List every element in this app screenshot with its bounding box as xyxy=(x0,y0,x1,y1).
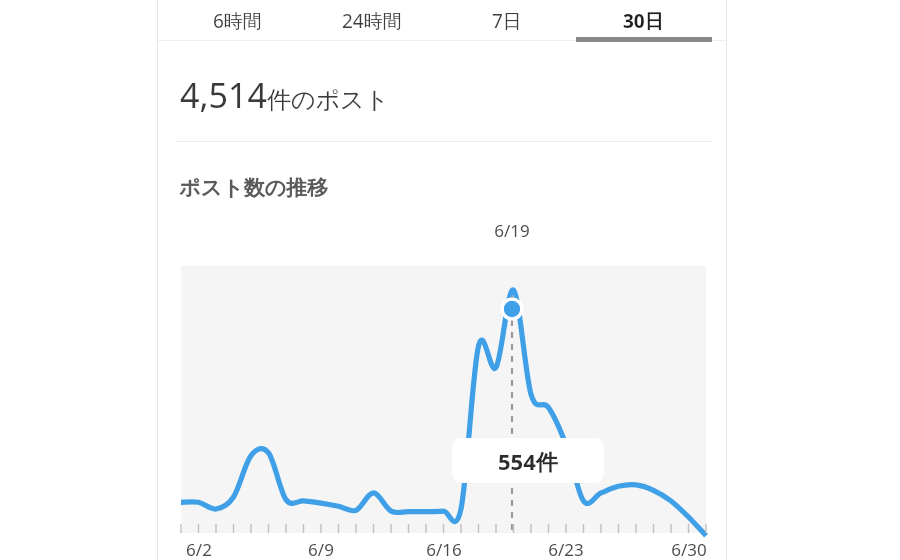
staticText: 7日 xyxy=(492,8,522,34)
staticText: 6/19 xyxy=(472,219,552,242)
staticText: 6/30 xyxy=(649,538,729,560)
staticText: 554件 xyxy=(498,446,558,476)
staticText: 30日 xyxy=(623,8,664,34)
staticText: 24時間 xyxy=(342,8,402,34)
staticText: 6時間 xyxy=(213,8,262,34)
button[interactable]: 6時間 xyxy=(169,0,305,41)
staticText: ポスト数の推移 xyxy=(179,175,328,201)
staticText: 6/23 xyxy=(526,538,606,560)
staticText: 6/9 xyxy=(281,538,361,560)
button[interactable]: 30日 xyxy=(575,0,711,41)
button[interactable]: 7日 xyxy=(439,0,575,41)
other: ポスト数の推移グラフ xyxy=(181,266,706,533)
staticText: 6/2 xyxy=(159,538,239,560)
button[interactable]: 554件 xyxy=(452,438,604,483)
button[interactable]: 24時間 xyxy=(304,0,440,41)
staticText: 4,514件のポスト xyxy=(180,72,390,118)
staticText: 6/16 xyxy=(404,538,484,560)
